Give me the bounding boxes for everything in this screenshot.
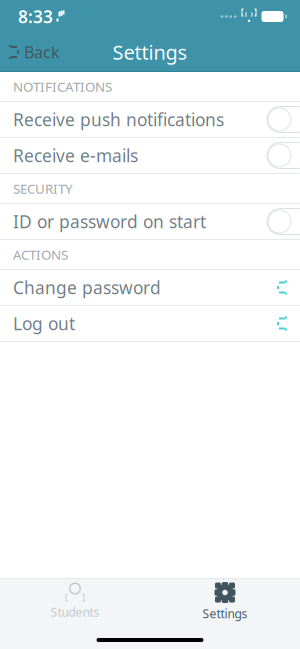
button[interactable]: Log out (0, 306, 300, 341)
staticText: Change password (13, 276, 161, 299)
staticText: Settings (112, 39, 187, 65)
staticText: 8:33 (18, 5, 53, 28)
staticText: SECURITY (13, 180, 73, 197)
staticText: Log out (13, 312, 75, 335)
button[interactable]: Change password (0, 270, 300, 305)
staticText: Back (24, 41, 60, 63)
button[interactable]: Receive push notifications (0, 102, 300, 137)
staticText: Settings (202, 605, 247, 621)
staticText: Receive push notifications (13, 108, 224, 131)
button[interactable]: Settings (150, 579, 300, 624)
button[interactable]: ID or password on start (0, 204, 300, 239)
staticText: ACTIONS (13, 246, 68, 263)
button[interactable]: Receive e-mails (0, 138, 300, 173)
staticText: NOTIFICATIONS (13, 78, 112, 95)
button[interactable]: Back (0, 33, 72, 71)
staticText: ID or password on start (13, 210, 206, 233)
staticText: Receive e-mails (13, 144, 138, 167)
button[interactable]: Students (0, 579, 150, 624)
staticText: Students (50, 604, 99, 620)
